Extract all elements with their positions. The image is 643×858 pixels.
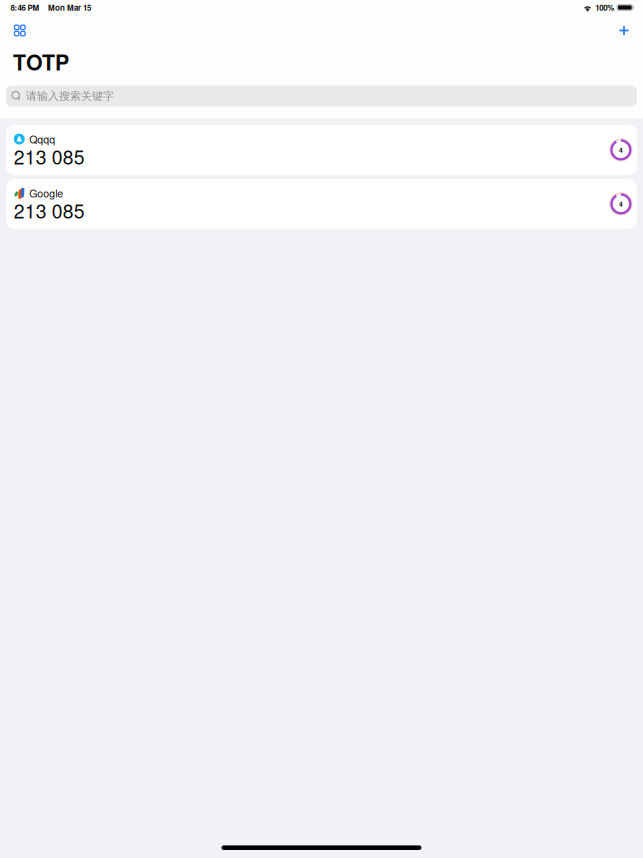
- staticText: Mon Mar 15: [48, 2, 91, 13]
- button[interactable]: Google: [6, 179, 637, 229]
- staticText: 8:46 PM: [10, 2, 39, 13]
- button[interactable]: Qqqq: [6, 125, 637, 175]
- staticText: 100%: [595, 2, 614, 13]
- staticText: Google: [29, 185, 63, 201]
- staticText: 4: [619, 145, 623, 155]
- staticText: TOTP: [13, 46, 69, 77]
- button[interactable]: Add account: [613, 21, 635, 40]
- button[interactable]: Grid layout: [8, 21, 31, 40]
- staticText: 213 085: [14, 142, 85, 170]
- staticText: 请输入搜索关键字: [26, 89, 114, 103]
- staticText: Qqqq: [29, 131, 55, 147]
- staticText: 4: [619, 199, 623, 209]
- staticText: 213 085: [14, 196, 85, 224]
- button[interactable]: 请输入搜索关键字: [6, 85, 637, 106]
